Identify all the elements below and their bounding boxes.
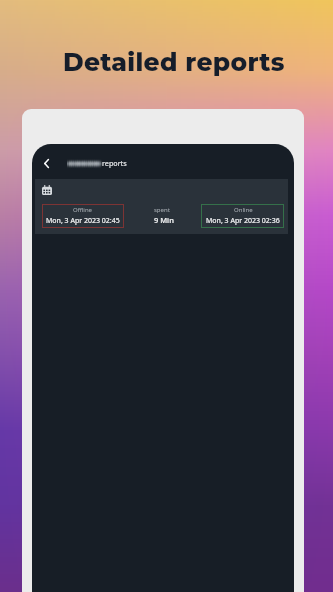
staticText: spent [154, 206, 170, 214]
staticText: Mon, 3 Apr 2023 02:45 [46, 216, 120, 226]
staticText: Online [234, 206, 253, 214]
staticText: Detailed reports [63, 47, 285, 77]
button[interactable]: Offline [42, 204, 124, 228]
staticText: Mon, 3 Apr 2023 02:36 [206, 216, 280, 226]
button[interactable]: Back [33, 150, 59, 176]
staticText: 9 Min [154, 215, 174, 225]
button[interactable]: Online [201, 204, 284, 228]
staticText: reports [102, 158, 127, 168]
staticText: Offline [73, 206, 93, 214]
